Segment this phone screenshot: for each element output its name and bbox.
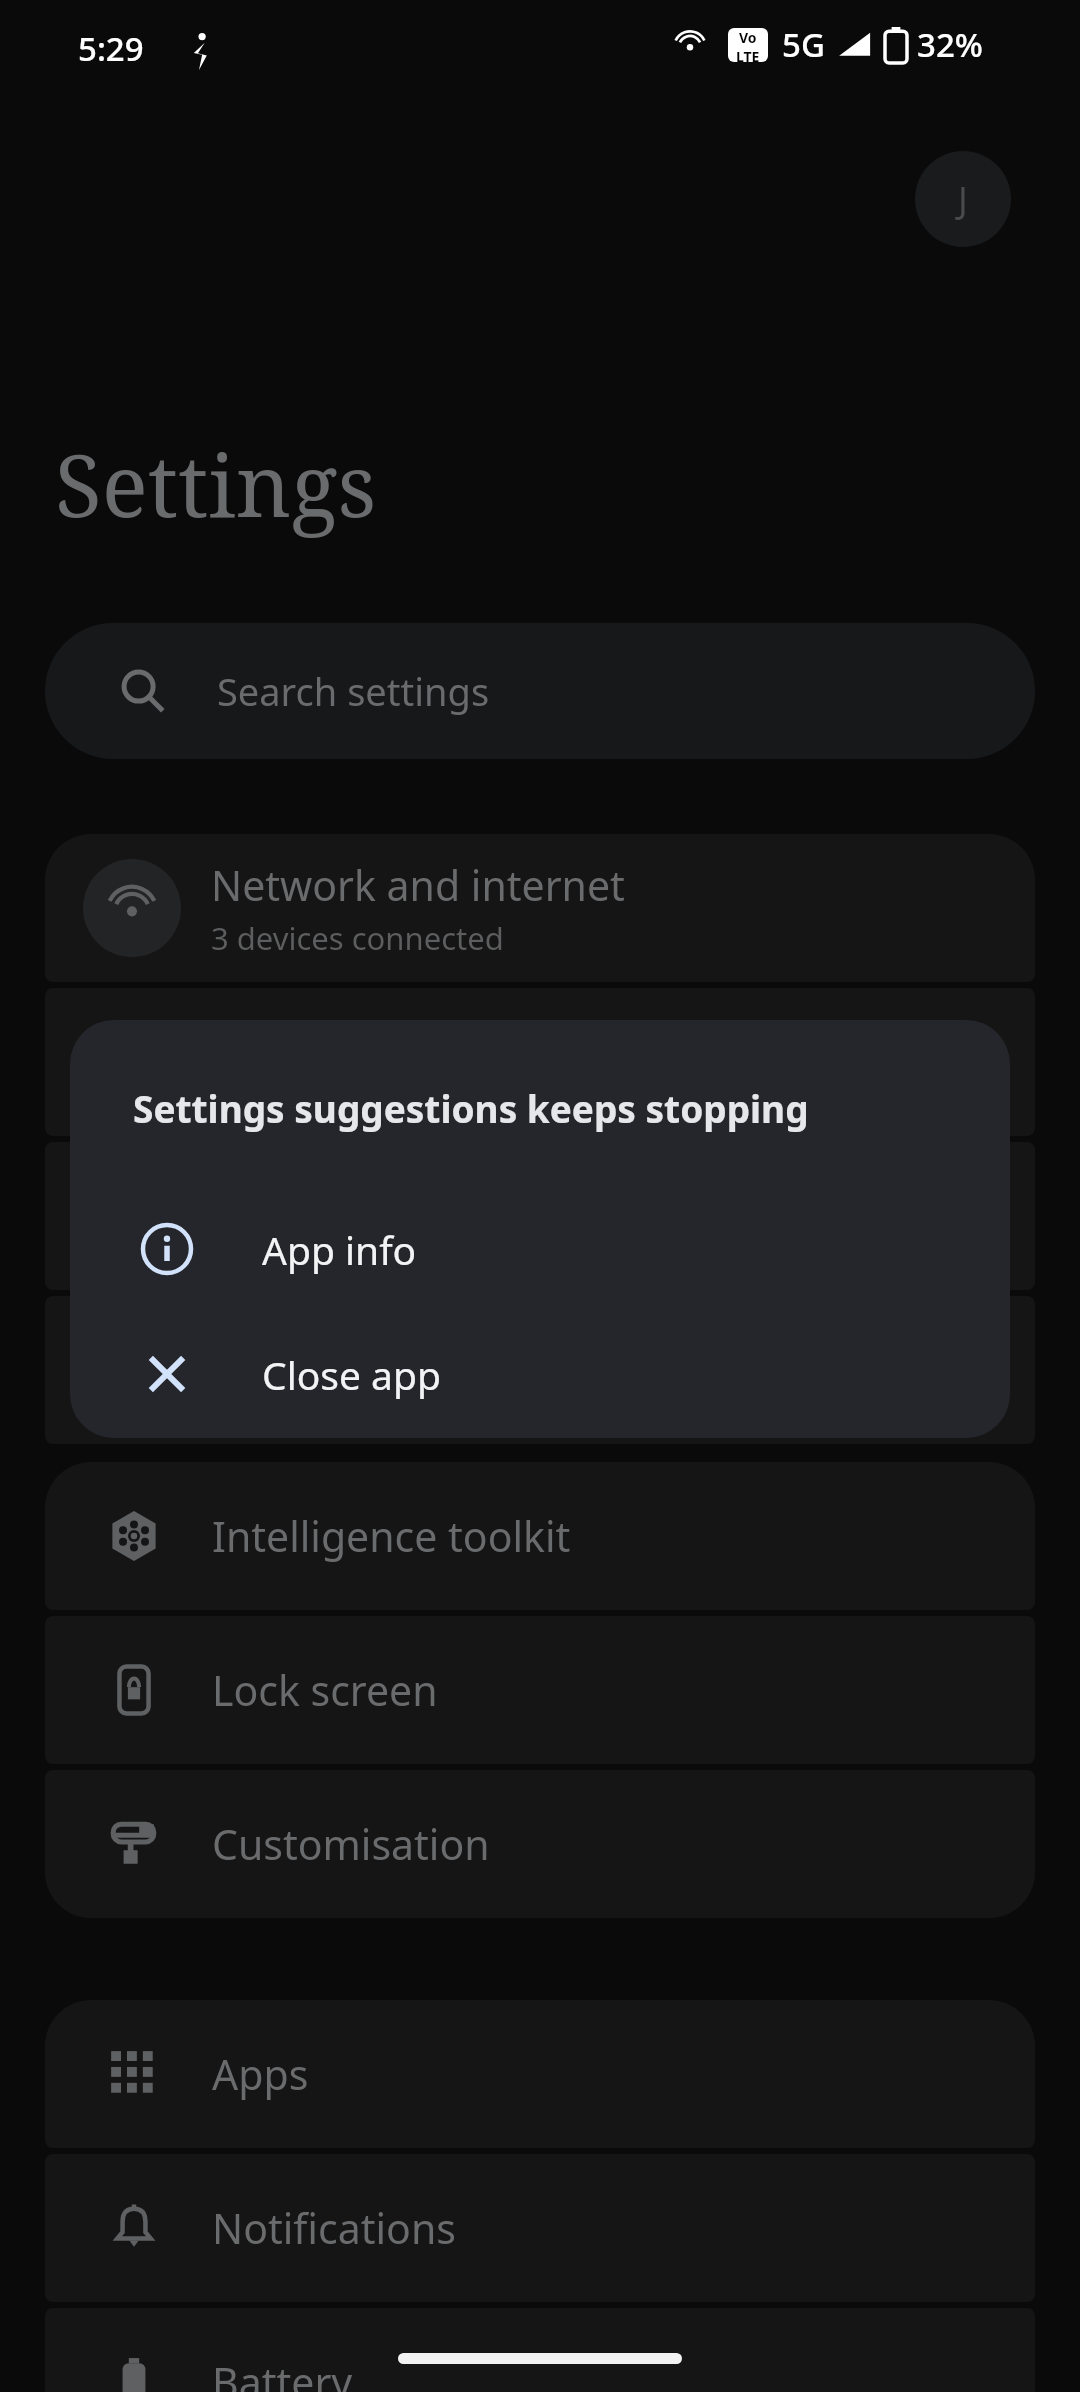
staticText: Vo xyxy=(739,28,757,47)
staticText: Customisation xyxy=(212,1816,490,1872)
staticText: Notifications xyxy=(212,2200,456,2256)
staticText: Network and internet xyxy=(211,857,625,913)
staticText: Settings suggestions keeps stopping xyxy=(133,1083,809,1133)
staticText: 5G xyxy=(782,22,825,67)
button[interactable]: Customisation xyxy=(45,1770,1035,1918)
staticText: Intelligence toolkit xyxy=(212,1508,571,1564)
button[interactable]: Account xyxy=(915,151,1011,247)
staticText: Search settings xyxy=(217,665,490,717)
button[interactable] xyxy=(45,988,1035,1136)
staticText: 3 devices connected xyxy=(211,917,504,959)
button[interactable]: Close app xyxy=(70,1313,1010,1435)
staticText: Close app xyxy=(262,1348,441,1401)
button[interactable] xyxy=(45,1142,1035,1290)
staticText: 5:29 xyxy=(78,26,144,71)
staticText: App info xyxy=(262,1223,417,1276)
button[interactable]: Lock screen xyxy=(45,1616,1035,1764)
staticText: Apps xyxy=(212,2046,309,2102)
button[interactable]: Battery xyxy=(45,2308,1035,2392)
button[interactable]: App info xyxy=(70,1188,1010,1310)
staticText: LTE xyxy=(736,47,760,62)
button[interactable]: Apps xyxy=(45,2000,1035,2148)
button[interactable]: Notifications xyxy=(45,2154,1035,2302)
button[interactable]: Network and internet xyxy=(45,834,1035,982)
staticText: Settings xyxy=(55,425,377,542)
staticText: 32% xyxy=(917,22,983,67)
button[interactable]: Intelligence toolkit xyxy=(45,1462,1035,1610)
staticText: Lock screen xyxy=(212,1662,438,1718)
staticText: Battery xyxy=(212,2354,353,2392)
button[interactable] xyxy=(45,1296,1035,1444)
button[interactable]: Search settings xyxy=(45,623,1035,759)
staticText: J xyxy=(958,175,968,224)
